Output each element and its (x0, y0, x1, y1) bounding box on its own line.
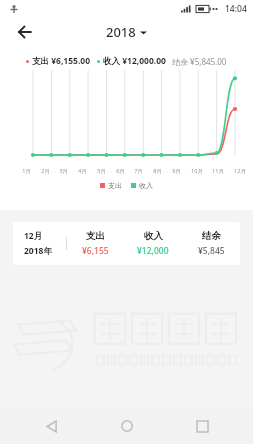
staticText: 10月 (191, 167, 203, 175)
staticText: 结余 ¥5,845.00 (172, 56, 227, 67)
button[interactable]: Recents (187, 411, 217, 441)
staticText: 12月 (24, 230, 43, 242)
button[interactable]: Back (36, 411, 66, 441)
staticText: 6月 (116, 167, 125, 175)
staticText: 收入 ¥12,000.00 (103, 55, 166, 67)
staticText: 3月 (59, 167, 68, 175)
staticText: ¥6,155 (82, 245, 109, 257)
staticText: 4月 (78, 167, 87, 175)
staticText: 收入 (144, 230, 163, 242)
staticText: 1月 (22, 167, 31, 175)
staticText: 8月 (153, 167, 162, 175)
staticText: 2月 (41, 167, 50, 175)
button[interactable]: Back (12, 19, 38, 45)
staticText: 收入 (139, 181, 153, 190)
button[interactable]: 2018 (106, 23, 147, 41)
button[interactable]: Home (112, 411, 142, 441)
staticText: 支出 (108, 181, 122, 190)
staticText: ¥12,000 (137, 245, 169, 257)
staticText: 11月 (212, 167, 224, 175)
staticText: 2018 (106, 23, 136, 41)
staticText: 12月 (234, 167, 246, 175)
staticText: 7月 (134, 167, 143, 175)
staticText: 支出 ¥6,155.00 (32, 55, 91, 67)
staticText: 结余 (202, 230, 221, 242)
button[interactable]: 12月 (13, 222, 240, 265)
staticText: 14:04 (225, 3, 247, 15)
staticText: 5月 (97, 167, 106, 175)
staticText: 支出 (86, 230, 105, 242)
staticText: 2018年 (24, 245, 52, 257)
staticText: ¥5,845 (198, 245, 225, 257)
staticText: 9月 (172, 167, 181, 175)
